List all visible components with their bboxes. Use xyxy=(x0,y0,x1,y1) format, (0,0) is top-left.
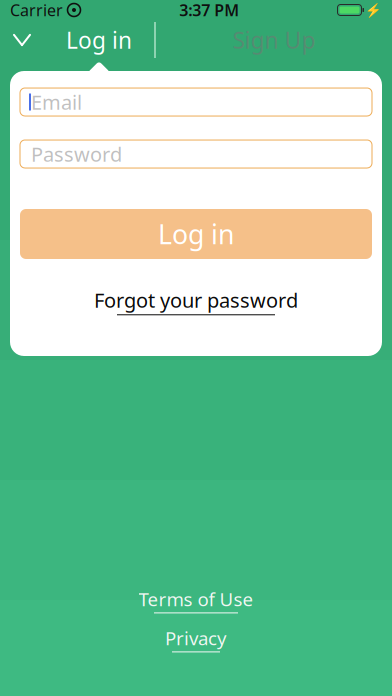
staticText: Sign Up xyxy=(232,25,315,55)
staticText: Terms of Use xyxy=(138,587,253,611)
button[interactable]: Forgot your password xyxy=(20,286,372,316)
staticText: Privacy xyxy=(165,626,227,650)
button[interactable]: Privacy xyxy=(0,626,392,652)
staticText: Forgot your password xyxy=(94,287,298,313)
button[interactable]: Log in xyxy=(44,20,154,60)
staticText: Email xyxy=(31,89,82,115)
staticText: ⚡ xyxy=(365,2,382,18)
button[interactable]: Terms of Use xyxy=(0,587,392,613)
staticText xyxy=(63,0,67,21)
staticText: Log in xyxy=(66,25,132,55)
button[interactable]: Collapse xyxy=(0,20,44,60)
staticText: Carrier xyxy=(10,0,63,21)
staticText: Log in xyxy=(158,216,234,252)
staticText: Password xyxy=(31,141,122,167)
staticText: 3:37 PM xyxy=(179,0,239,21)
button[interactable]: Log in xyxy=(20,209,372,259)
button[interactable]: Sign Up xyxy=(156,20,392,60)
